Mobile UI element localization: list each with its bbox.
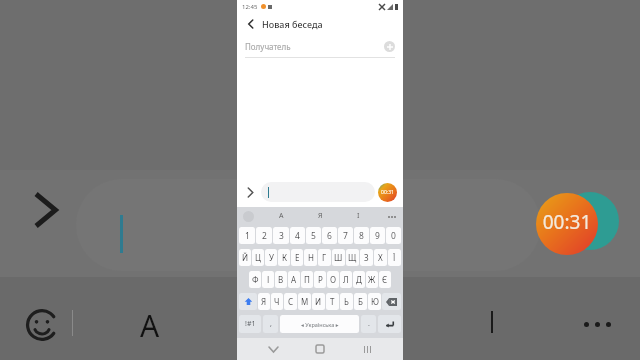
- staticText: Є: [382, 274, 388, 285]
- button[interactable]: 3: [273, 227, 289, 244]
- staticText: 5: [311, 230, 316, 242]
- button[interactable]: Ч: [271, 293, 283, 310]
- button[interactable]: П: [301, 271, 313, 288]
- button[interactable]: Е: [291, 249, 303, 266]
- staticText: П: [304, 274, 310, 285]
- button[interactable]: [261, 182, 375, 202]
- staticText: Н: [308, 252, 314, 263]
- staticText: !#1: [245, 319, 256, 329]
- staticText: А: [291, 274, 297, 285]
- button[interactable]: 8: [354, 227, 369, 244]
- button[interactable]: О: [327, 271, 339, 288]
- button[interactable]: А: [288, 271, 300, 288]
- button[interactable]: В: [275, 271, 287, 288]
- staticText: 00:31: [536, 209, 598, 235]
- button[interactable]: Є: [379, 271, 391, 288]
- button[interactable]: Hide keyboard: [262, 338, 284, 360]
- staticText: Д: [356, 274, 362, 285]
- button[interactable]: Ф: [249, 271, 261, 288]
- button[interactable]: І: [262, 271, 274, 288]
- button[interactable]: Ї: [388, 249, 401, 266]
- button[interactable]: Space, Ukrainian: [280, 315, 359, 333]
- button[interactable]: Я: [318, 211, 323, 221]
- button[interactable]: !#1: [239, 315, 261, 333]
- button[interactable]: Back: [244, 17, 258, 31]
- staticText: Щ: [348, 252, 357, 263]
- button[interactable]: Б: [354, 293, 367, 310]
- button[interactable]: Back: [237, 13, 403, 34]
- button[interactable]: Ь: [340, 293, 353, 310]
- button[interactable]: .: [361, 315, 376, 333]
- staticText: Г: [322, 252, 327, 263]
- staticText: Ц: [255, 252, 261, 263]
- button[interactable]: Ю: [368, 293, 381, 310]
- button[interactable]: У: [265, 249, 277, 266]
- staticText: Е: [295, 252, 300, 263]
- button[interactable]: М: [298, 293, 311, 310]
- staticText: Новая беседа: [262, 18, 323, 30]
- staticText: Ь: [344, 296, 349, 307]
- button[interactable]: Backspace: [382, 293, 401, 310]
- staticText: 6: [327, 230, 332, 242]
- staticText: Т: [330, 296, 335, 307]
- staticText: С: [288, 296, 294, 307]
- staticText: 12:45: [242, 3, 258, 11]
- staticText: Л: [343, 274, 349, 285]
- staticText: 1: [245, 230, 250, 242]
- button[interactable]: Shift: [239, 293, 257, 310]
- button[interactable]: I: [357, 211, 360, 221]
- button[interactable]: Enter: [378, 315, 401, 333]
- staticText: М: [301, 296, 309, 307]
- staticText: ,: [270, 319, 272, 329]
- staticText: Б: [358, 296, 363, 307]
- staticText: И: [315, 296, 322, 307]
- button[interactable]: 6: [322, 227, 337, 244]
- button[interactable]: 0: [386, 227, 401, 244]
- button[interactable]: More: [386, 211, 397, 222]
- staticText: Получатель: [245, 41, 291, 52]
- staticText: О: [330, 274, 337, 285]
- button[interactable]: More options: [243, 185, 257, 199]
- button[interactable]: С: [284, 293, 297, 310]
- button[interactable]: 5: [306, 227, 321, 244]
- button[interactable]: Х: [374, 249, 387, 266]
- staticText: ◂ Українська ▸: [301, 321, 339, 328]
- button[interactable]: 1: [239, 227, 255, 244]
- button[interactable]: Recording 00:31: [378, 183, 397, 202]
- button[interactable]: Т: [326, 293, 339, 310]
- button[interactable]: Щ: [346, 249, 359, 266]
- staticText: 0: [391, 230, 396, 242]
- staticText: 2: [262, 230, 267, 242]
- staticText: Ю: [371, 296, 379, 307]
- button[interactable]: Ж: [366, 271, 378, 288]
- button[interactable]: Й: [239, 249, 251, 266]
- staticText: 9: [375, 230, 380, 242]
- staticText: A: [140, 305, 160, 346]
- button[interactable]: Н: [304, 249, 317, 266]
- button[interactable]: З: [360, 249, 373, 266]
- button[interactable]: Я: [258, 293, 270, 310]
- button[interactable]: Emoji: [243, 211, 254, 222]
- button[interactable]: Л: [340, 271, 352, 288]
- button[interactable]: 7: [338, 227, 353, 244]
- button[interactable]: 4: [290, 227, 305, 244]
- staticText: Ї: [393, 252, 396, 263]
- button[interactable]: Д: [353, 271, 365, 288]
- button[interactable]: Р: [314, 271, 326, 288]
- staticText: 7: [343, 230, 348, 242]
- button[interactable]: Ш: [332, 249, 345, 266]
- button[interactable]: 9: [370, 227, 385, 244]
- button[interactable]: Recents: [356, 338, 378, 360]
- button[interactable]: Home: [309, 338, 331, 360]
- button[interactable]: Г: [318, 249, 331, 266]
- staticText: Я: [261, 296, 267, 307]
- button[interactable]: ,: [263, 315, 278, 333]
- button[interactable]: К: [278, 249, 290, 266]
- button[interactable]: Получатель: [237, 34, 403, 58]
- button[interactable]: Add recipient: [384, 41, 395, 52]
- button[interactable]: И: [312, 293, 325, 310]
- staticText: Й: [242, 252, 249, 263]
- button[interactable]: Ц: [252, 249, 264, 266]
- button[interactable]: 2: [256, 227, 272, 244]
- button[interactable]: A: [279, 211, 284, 221]
